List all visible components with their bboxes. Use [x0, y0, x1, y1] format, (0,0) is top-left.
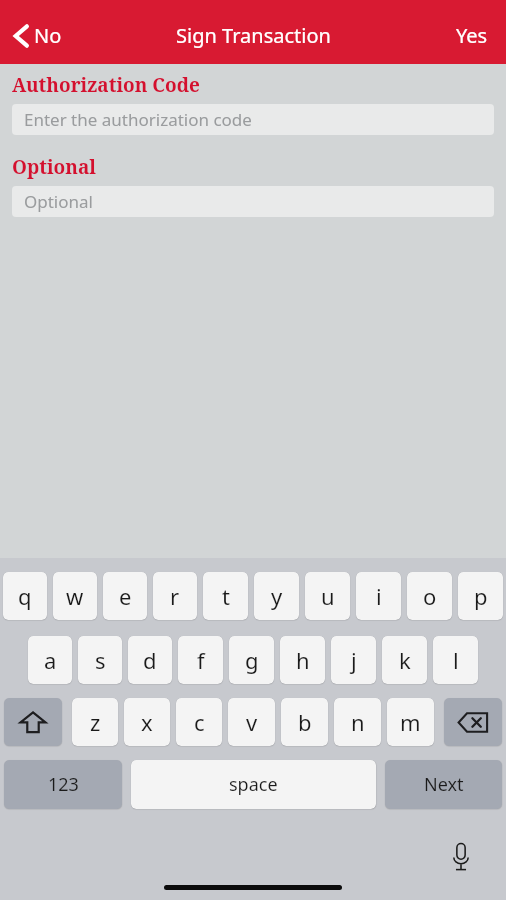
- button[interactable]: q: [3, 572, 47, 620]
- staticText: h: [296, 645, 310, 675]
- staticText: Next: [424, 772, 464, 797]
- button[interactable]: u: [305, 572, 350, 620]
- button[interactable]: l: [433, 636, 478, 684]
- staticText: u: [321, 581, 335, 611]
- staticText: y: [271, 581, 283, 611]
- button[interactable]: Voice input: [444, 840, 478, 874]
- staticText: f: [197, 645, 205, 675]
- staticText: v: [246, 707, 258, 737]
- button[interactable]: Next: [385, 760, 502, 809]
- staticText: 123: [48, 772, 79, 797]
- button[interactable]: i: [356, 572, 401, 620]
- staticText: Sign Transaction: [176, 22, 331, 49]
- staticText: b: [298, 707, 312, 737]
- button[interactable]: n: [334, 698, 381, 746]
- button[interactable]: Yes: [440, 16, 506, 55]
- button[interactable]: j: [331, 636, 376, 684]
- button[interactable]: y: [254, 572, 299, 620]
- staticText: q: [18, 581, 32, 611]
- staticText: j: [351, 645, 357, 675]
- button[interactable]: v: [228, 698, 275, 746]
- staticText: Optional: [12, 154, 97, 180]
- staticText: a: [44, 645, 57, 675]
- button[interactable]: g: [229, 636, 274, 684]
- staticText: o: [423, 581, 437, 611]
- staticText: n: [351, 707, 365, 737]
- button[interactable]: c: [176, 698, 222, 746]
- staticText: p: [474, 581, 488, 611]
- button[interactable]: e: [103, 572, 147, 620]
- staticText: k: [399, 645, 411, 675]
- button[interactable]: t: [203, 572, 248, 620]
- staticText: Enter the authorization code: [24, 108, 252, 131]
- staticText: Optional: [24, 190, 93, 213]
- staticText: s: [95, 645, 106, 675]
- button[interactable]: m: [387, 698, 434, 746]
- button[interactable]: a: [28, 636, 72, 684]
- staticText: t: [222, 581, 230, 611]
- button[interactable]: Enter the authorization code: [12, 104, 494, 135]
- button[interactable]: No: [0, 16, 78, 55]
- button[interactable]: b: [281, 698, 328, 746]
- button[interactable]: z: [72, 698, 118, 746]
- button[interactable]: x: [124, 698, 170, 746]
- staticText: x: [141, 707, 153, 737]
- button[interactable]: s: [78, 636, 122, 684]
- button[interactable]: Backspace: [444, 698, 502, 746]
- staticText: d: [143, 645, 157, 675]
- staticText: l: [453, 645, 459, 675]
- staticText: No: [34, 22, 62, 49]
- staticText: r: [170, 581, 180, 611]
- button[interactable]: p: [458, 572, 503, 620]
- button[interactable]: Shift: [4, 698, 62, 746]
- staticText: i: [376, 581, 382, 611]
- button[interactable]: 123: [4, 760, 122, 809]
- staticText: w: [66, 581, 84, 611]
- staticText: z: [90, 707, 101, 737]
- button[interactable]: space: [131, 760, 376, 809]
- button[interactable]: d: [128, 636, 172, 684]
- staticText: c: [194, 707, 205, 737]
- staticText: m: [400, 707, 421, 737]
- staticText: Yes: [456, 22, 488, 49]
- staticText: space: [229, 772, 278, 797]
- button[interactable]: r: [153, 572, 197, 620]
- staticText: Authorization Code: [12, 72, 200, 98]
- button[interactable]: Optional: [12, 186, 494, 217]
- button[interactable]: h: [280, 636, 325, 684]
- staticText: e: [119, 581, 132, 611]
- button[interactable]: f: [178, 636, 223, 684]
- button[interactable]: o: [407, 572, 452, 620]
- button[interactable]: k: [382, 636, 427, 684]
- button[interactable]: w: [53, 572, 97, 620]
- staticText: g: [245, 645, 259, 675]
